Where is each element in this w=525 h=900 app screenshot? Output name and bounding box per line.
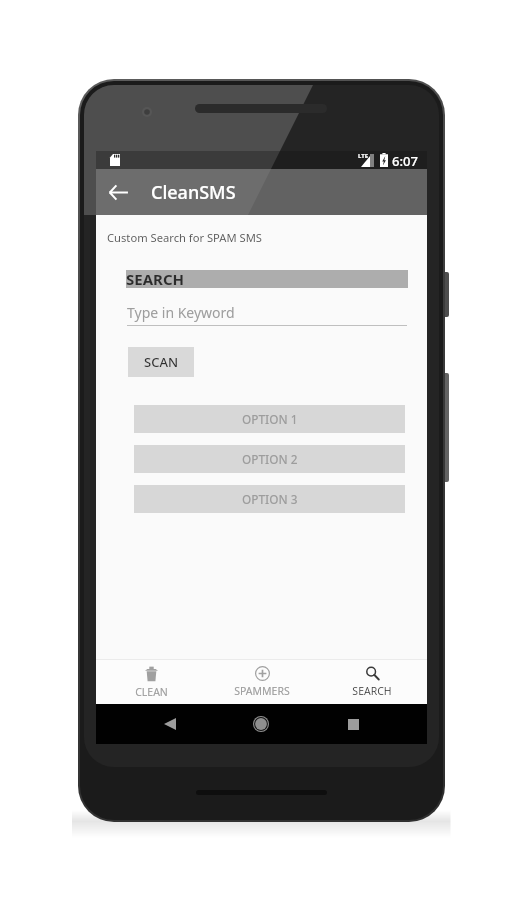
staticText: LTE — [358, 152, 369, 160]
button[interactable]: SCAN — [128, 347, 194, 377]
button[interactable]: Home — [243, 704, 278, 744]
staticText: OPTION 1 — [242, 411, 298, 427]
button[interactable]: SPAMMERS — [207, 660, 317, 704]
staticText: 6:07 — [392, 152, 418, 170]
staticText: SPAMMERS — [234, 684, 290, 698]
staticText: SEARCH — [352, 684, 392, 698]
staticText: CLEAN — [135, 685, 168, 699]
button[interactable]: Back — [96, 169, 140, 215]
staticText: Custom Search for SPAM SMS — [107, 230, 262, 245]
staticText: SEARCH — [126, 269, 184, 287]
staticText: OPTION 2 — [242, 451, 298, 467]
button[interactable]: Recent apps — [336, 704, 371, 744]
staticText: Type in Keyword — [127, 303, 235, 322]
button[interactable]: OPTION 1 — [134, 405, 405, 433]
button[interactable]: SEARCH — [317, 660, 427, 704]
button[interactable]: OPTION 2 — [134, 445, 405, 473]
button[interactable]: SEARCH — [126, 270, 408, 288]
button[interactable]: Back — [152, 704, 187, 744]
button[interactable]: OPTION 3 — [134, 485, 405, 513]
button[interactable]: CLEAN — [96, 660, 207, 704]
staticText: SCAN — [144, 353, 179, 371]
staticText: OPTION 3 — [242, 491, 298, 507]
staticText: CleanSMS — [151, 180, 236, 205]
